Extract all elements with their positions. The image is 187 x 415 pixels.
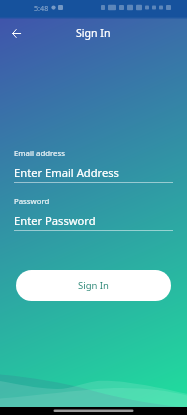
button[interactable]: Sign In — [16, 270, 171, 301]
button[interactable]: Back — [5, 22, 27, 44]
staticText: Password — [14, 196, 50, 207]
staticText: 5:48 — [34, 3, 49, 13]
staticText: Enter Password — [14, 213, 96, 228]
button[interactable]: Password — [14, 196, 173, 231]
staticText: Sign In — [76, 26, 111, 40]
staticText: Sign In — [78, 279, 109, 292]
button[interactable]: Email address — [14, 148, 173, 183]
staticText: Enter Email Address — [14, 165, 119, 180]
staticText: Email address — [14, 148, 65, 159]
